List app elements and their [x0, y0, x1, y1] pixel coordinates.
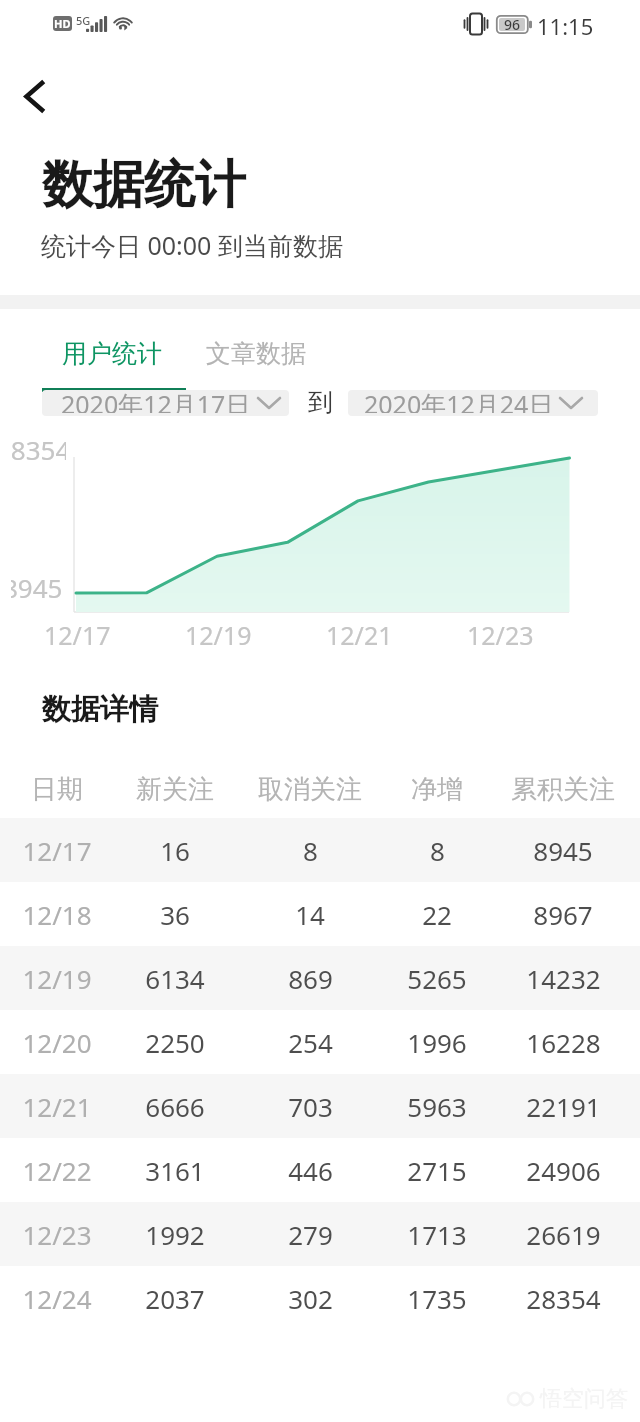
staticText: 文章数据	[206, 338, 306, 369]
staticText: 12/23	[467, 618, 534, 652]
staticText: 1735	[407, 1281, 467, 1316]
staticText: 11:15	[537, 11, 594, 41]
staticText: 12/18	[22, 897, 92, 932]
staticText: 16228	[526, 1025, 601, 1060]
button[interactable]: 12/21	[0, 1074, 640, 1138]
staticText: 28354	[526, 1281, 601, 1316]
staticText: 12/19	[22, 961, 92, 996]
staticText: 22191	[526, 1089, 601, 1124]
staticText: 6134	[145, 961, 205, 996]
staticText: 24906	[526, 1153, 601, 1188]
staticText: 12/17	[22, 833, 92, 868]
staticText: 取消关注	[258, 773, 362, 806]
staticText: 279	[288, 1217, 333, 1252]
staticText: 12/21	[326, 618, 393, 652]
staticText: 1992	[145, 1217, 205, 1252]
button[interactable]: Back	[5, 67, 63, 125]
staticText: 28354	[11, 432, 66, 462]
button[interactable]: 文章数据	[198, 330, 314, 377]
staticText: 净增	[411, 773, 463, 806]
button[interactable]: 12/18	[0, 882, 640, 946]
staticText: 12/21	[22, 1089, 92, 1124]
staticText: 1996	[407, 1025, 467, 1060]
staticText: 1713	[407, 1217, 467, 1252]
staticText: 日期	[31, 773, 83, 806]
staticText: 3161	[145, 1153, 205, 1188]
staticText: 2250	[145, 1025, 205, 1060]
staticText: 2715	[407, 1153, 467, 1188]
staticText: 用户统计	[62, 338, 162, 369]
staticText: 12/19	[185, 618, 252, 652]
staticText: 869	[288, 961, 333, 996]
staticText: 96	[504, 15, 521, 34]
staticText: 5G	[76, 13, 91, 28]
staticText: 悟空问答	[540, 1385, 628, 1413]
staticText: 36	[160, 897, 190, 932]
button[interactable]: 12/20	[0, 1010, 640, 1074]
staticText: 254	[288, 1025, 333, 1060]
staticText: 8945	[11, 570, 63, 600]
staticText: 16	[160, 833, 190, 868]
staticText: 数据统计	[42, 153, 246, 217]
button[interactable]: 用户统计	[54, 330, 170, 377]
staticText: 14	[295, 897, 325, 932]
button[interactable]: 12/22	[0, 1138, 640, 1202]
staticText: 6666	[145, 1089, 205, 1124]
button[interactable]: 12/19	[0, 946, 640, 1010]
staticText: 22	[422, 897, 452, 932]
staticText: 到	[308, 387, 333, 418]
staticText: 12/20	[22, 1025, 92, 1060]
button[interactable]: 12/17	[0, 818, 640, 882]
staticText: 12/23	[22, 1217, 92, 1252]
button[interactable]: 2020年12月24日	[348, 390, 598, 416]
staticText: 8	[430, 833, 445, 868]
staticText: 12/22	[22, 1153, 92, 1188]
button[interactable]: 12/24	[0, 1266, 640, 1330]
staticText: 26619	[526, 1217, 601, 1252]
staticText: 5963	[407, 1089, 467, 1124]
staticText: 446	[288, 1153, 333, 1188]
staticText: 2020年12月24日	[364, 390, 554, 413]
staticText: HD	[54, 16, 71, 31]
staticText: 2020年12月17日	[61, 390, 251, 413]
staticText: 14232	[526, 961, 601, 996]
staticText: 数据详情	[42, 691, 158, 728]
staticText: 703	[288, 1089, 333, 1124]
staticText: 12/17	[44, 618, 111, 652]
button[interactable]: 12/23	[0, 1202, 640, 1266]
staticText: 8967	[533, 897, 593, 932]
staticText: 8945	[533, 833, 593, 868]
button[interactable]: 2020年12月17日	[42, 390, 289, 416]
staticText: 5265	[407, 961, 467, 996]
staticText: 302	[288, 1281, 333, 1316]
staticText: 累积关注	[511, 773, 615, 806]
button[interactable]: 日期	[0, 760, 640, 818]
staticText: 新关注	[136, 773, 214, 806]
staticText: 12/24	[22, 1281, 92, 1316]
staticText: 统计今日 00:00 到当前数据	[41, 228, 343, 262]
staticText: 2037	[145, 1281, 205, 1316]
staticText: 8	[303, 833, 318, 868]
